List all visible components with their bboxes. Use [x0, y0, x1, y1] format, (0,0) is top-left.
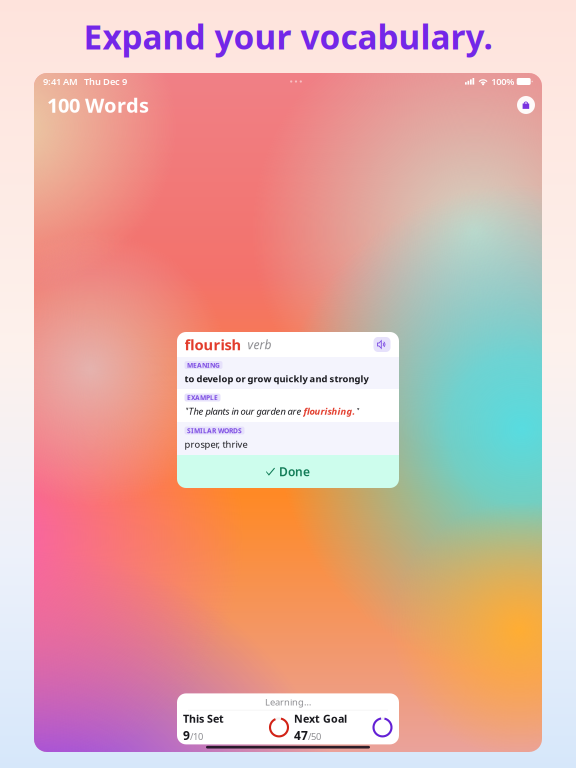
- staticText: 100%: [491, 75, 514, 88]
- staticText: to develop or grow quickly and strongly: [184, 373, 368, 385]
- staticText: verb: [241, 336, 271, 352]
- staticText: EXAMPLE: [187, 393, 218, 402]
- staticText: Learning…: [265, 696, 311, 708]
- staticText: flourishing.: [303, 405, 355, 417]
- staticText: "The plants in our garden are: [184, 405, 303, 417]
- staticText: This Set: [183, 712, 224, 726]
- staticText: flourish: [184, 335, 241, 354]
- staticText: Thu Dec 9: [84, 75, 127, 88]
- staticText: Done: [279, 463, 310, 479]
- staticText: 9:41 AM: [43, 75, 78, 88]
- staticText: Next Goal: [294, 712, 347, 726]
- staticText: SIMILAR WORDS: [187, 426, 242, 435]
- button[interactable]: Pronounce: [372, 335, 391, 353]
- staticText: 100 Words: [47, 92, 149, 118]
- staticText: 47: [294, 727, 308, 743]
- staticText: MEANING: [187, 361, 220, 369]
- button[interactable]: Locked: [514, 93, 538, 117]
- staticText: /10: [190, 730, 203, 742]
- staticText: prosper, thrive: [184, 438, 247, 450]
- staticText: ": [355, 405, 359, 417]
- staticText: Expand your vocabulary.: [83, 14, 492, 59]
- staticText: 9: [183, 727, 190, 743]
- button[interactable]: Done: [177, 455, 399, 488]
- staticText: /50: [308, 730, 321, 742]
